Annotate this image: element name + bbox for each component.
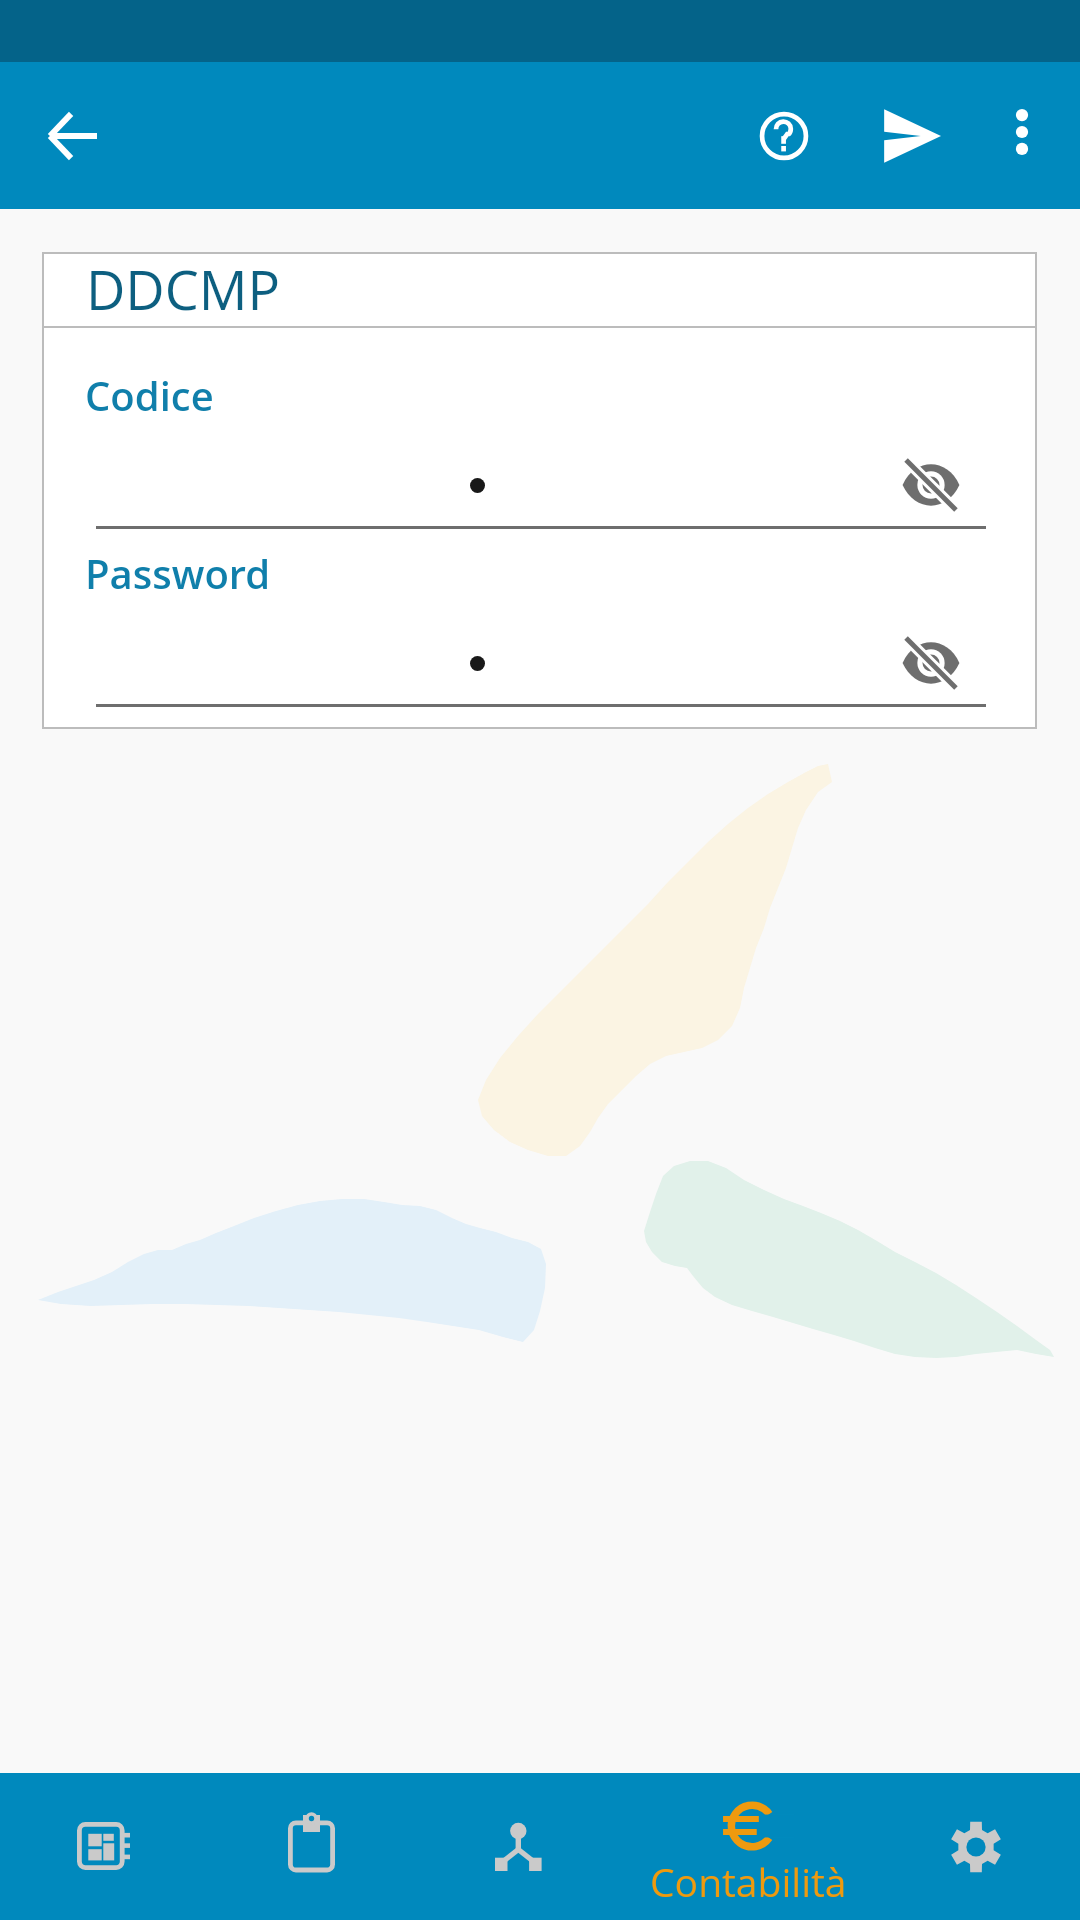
- button[interactable]: More options: [982, 92, 1062, 172]
- button[interactable]: Struttura: [418, 1773, 618, 1920]
- button[interactable]: Back: [29, 92, 117, 180]
- button[interactable]: Contabilità: [632, 1773, 864, 1920]
- button[interactable]: Send: [868, 92, 956, 180]
- button[interactable]: Rubrica: [3, 1773, 203, 1920]
- staticText: Password: [85, 546, 271, 600]
- button[interactable]: Help: [740, 92, 828, 180]
- button[interactable]: Impostazioni: [872, 1773, 1080, 1920]
- staticText: Codice: [85, 368, 214, 422]
- button[interactable]: Documenti: [211, 1773, 411, 1920]
- staticText: Contabilità: [650, 1855, 847, 1908]
- button[interactable]: Toggle password visibility: [890, 444, 972, 526]
- staticText: DDCMP: [86, 252, 281, 326]
- button[interactable]: Toggle password visibility: [890, 622, 972, 704]
